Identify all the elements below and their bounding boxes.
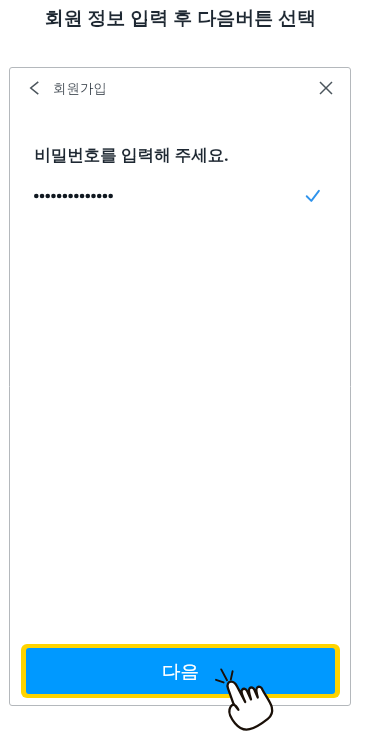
button[interactable] xyxy=(9,184,351,200)
staticText: 회원 정보 입력 후 다음버튼 선택 xyxy=(44,5,316,31)
staticText: 비밀번호를 입력해 주세요. xyxy=(34,143,229,166)
staticText: 다음 xyxy=(162,660,199,683)
button[interactable]: 다음 xyxy=(26,648,335,694)
button[interactable]: 뒤로 xyxy=(21,75,47,101)
staticText: 회원가입 xyxy=(53,80,107,97)
button[interactable]: 닫기 xyxy=(315,77,337,99)
